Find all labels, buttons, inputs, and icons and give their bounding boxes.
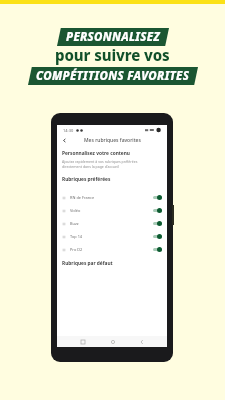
staticText: 14:30 (63, 128, 74, 133)
staticText: Pro D2 (70, 247, 83, 252)
staticText: Vidéo (70, 208, 81, 213)
staticText: PERSONNALISEZ (66, 29, 160, 45)
staticText: Rubriques par défaut (62, 260, 113, 267)
staticText: Ajoutez rapidement à vos rubriques préfé… (62, 159, 138, 169)
staticText: Buzz (70, 221, 79, 226)
button[interactable]: Recent apps (78, 337, 87, 346)
staticText: Rubriques préférées (62, 176, 111, 183)
button[interactable]: Top 14 (62, 230, 162, 243)
button[interactable]: Back (137, 337, 146, 346)
button[interactable]: Home (108, 337, 117, 346)
staticText: Personnalisez votre contenu (62, 150, 130, 157)
staticText: Top 14 (70, 234, 83, 239)
button[interactable]: Vidéo (62, 204, 162, 217)
staticText: COMPÉTITIONS FAVORITES (36, 68, 190, 84)
staticText: pour suivre vos (55, 45, 170, 65)
button[interactable]: Back (60, 136, 68, 144)
staticText: RN de France (70, 195, 95, 200)
button[interactable]: RN de France (62, 191, 162, 204)
staticText: Mes rubriques favorites (84, 137, 141, 144)
button[interactable]: Pro D2 (62, 243, 162, 256)
button[interactable]: Buzz (62, 217, 162, 230)
